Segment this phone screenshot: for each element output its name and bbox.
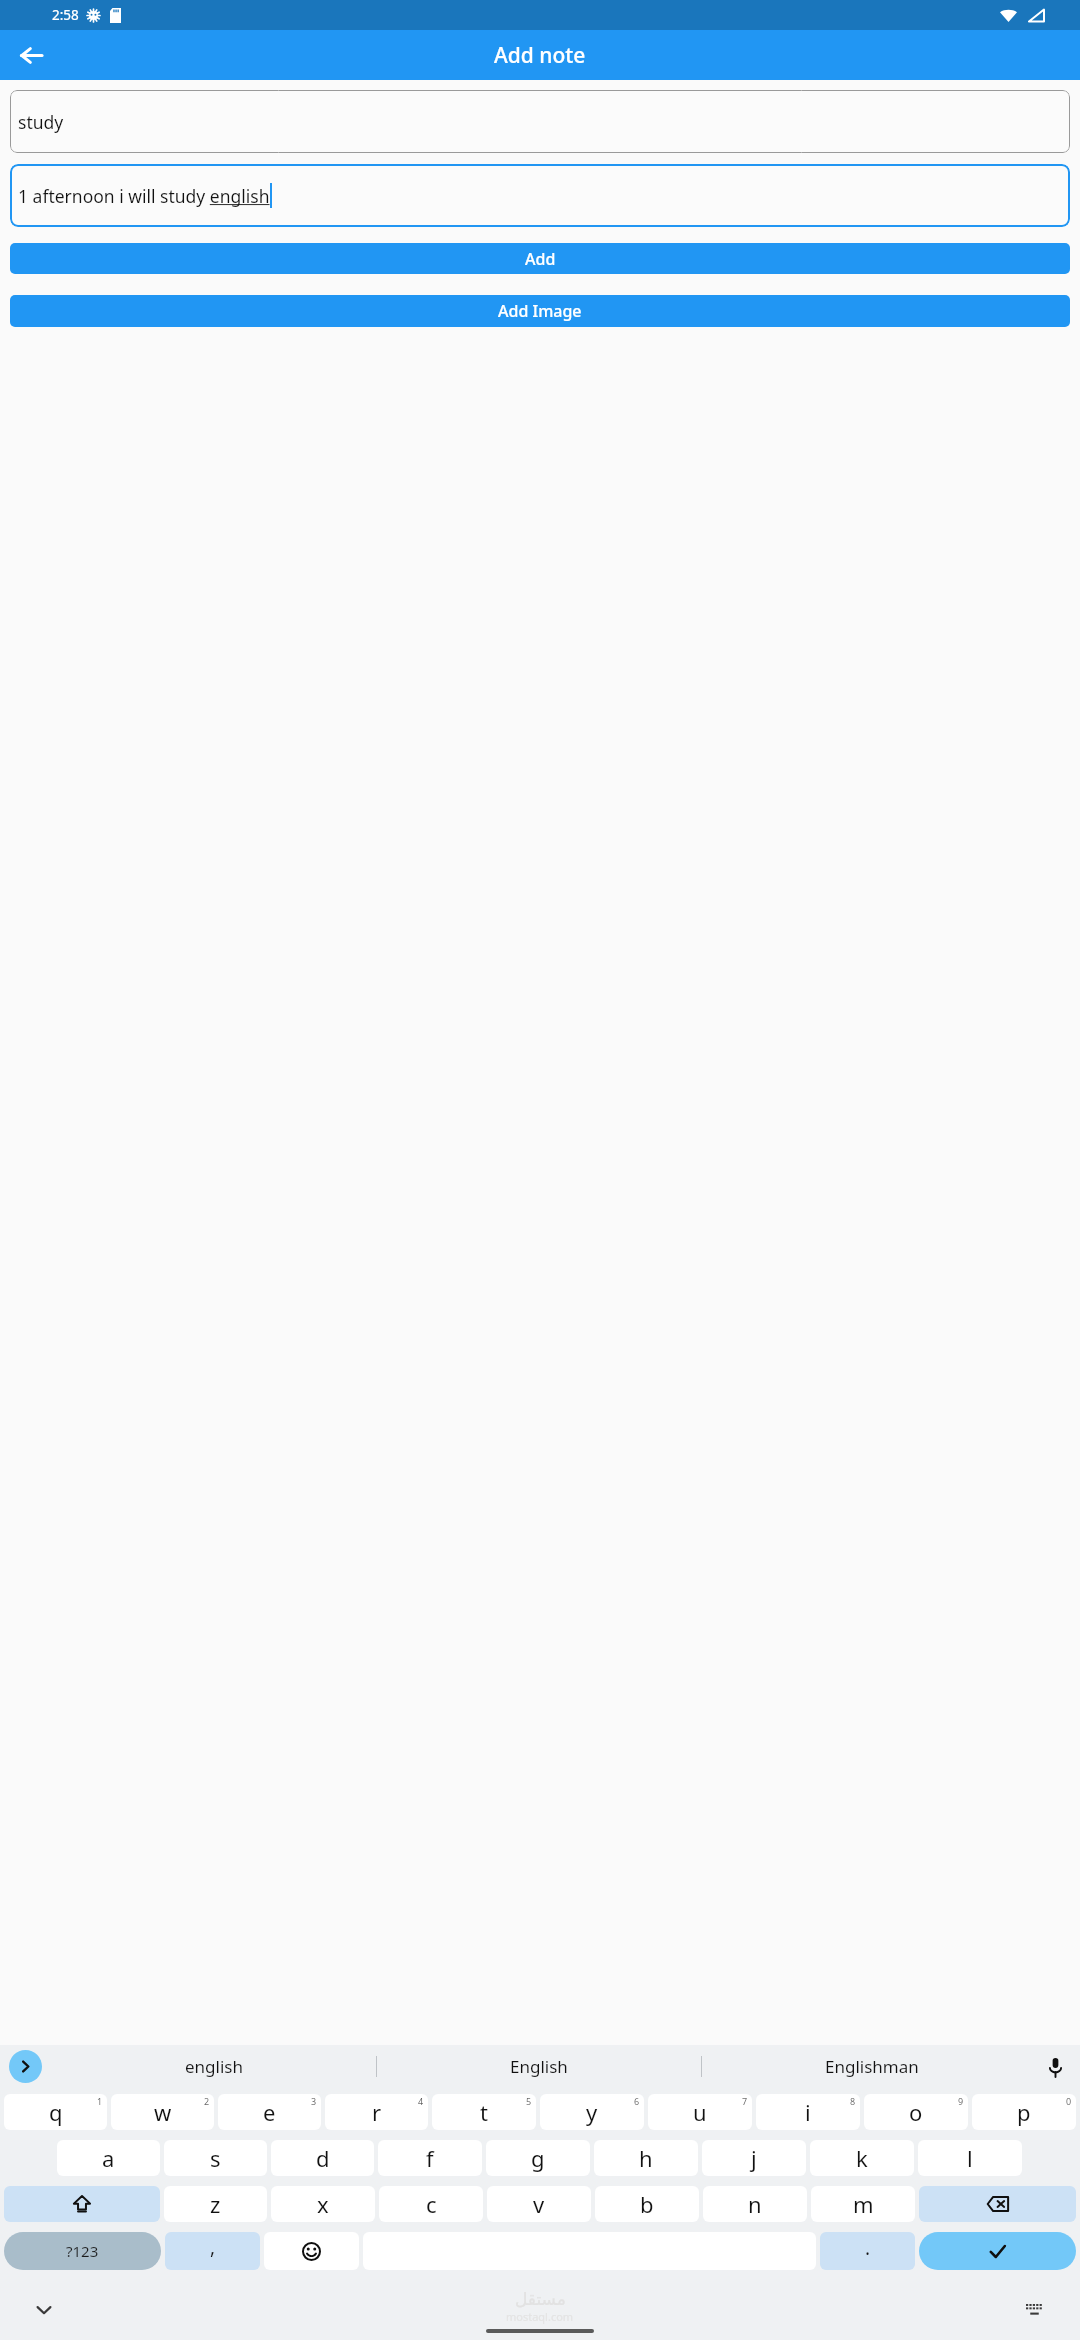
staticText: 9 (958, 2095, 964, 2107)
staticText: l (967, 2143, 973, 2173)
staticText: u (693, 2097, 707, 2127)
staticText: 1 afternoon i will study english (18, 184, 270, 208)
staticText: 2 (204, 2095, 210, 2107)
staticText: x (317, 2189, 329, 2219)
staticText: English (510, 2055, 568, 2078)
staticText: . (865, 2235, 871, 2261)
staticText: s (210, 2143, 221, 2173)
staticText: w (154, 2097, 172, 2127)
staticText: english (185, 2055, 243, 2078)
staticText: 2:58 (52, 6, 79, 24)
staticText: t (480, 2097, 488, 2127)
staticText: e (263, 2097, 276, 2127)
staticText: مستقل (515, 2289, 566, 2309)
staticText: n (748, 2189, 762, 2219)
button[interactable]: More suggestions (9, 2050, 42, 2083)
button[interactable]: english (52, 2045, 376, 2088)
staticText: p (1017, 2097, 1031, 2127)
button[interactable]: q (4, 2094, 107, 2130)
staticText: m (853, 2189, 874, 2219)
staticText: d (316, 2143, 330, 2173)
button[interactable]: Englishman (702, 2045, 1042, 2088)
button[interactable]: y (540, 2094, 644, 2130)
button[interactable]: study (10, 90, 1070, 153)
staticText: 4 (418, 2095, 424, 2107)
button[interactable]: Switch keyboard (1014, 2290, 1054, 2330)
button[interactable]: English (377, 2045, 701, 2088)
button[interactable]: e (218, 2094, 321, 2130)
staticText: study (18, 110, 64, 134)
button[interactable]: Enter (919, 2232, 1076, 2270)
button[interactable]: m (811, 2186, 915, 2222)
staticText: v (533, 2189, 545, 2219)
button[interactable]: Hide keyboard (24, 2290, 64, 2330)
button[interactable]: z (164, 2186, 267, 2222)
button[interactable]: s (164, 2140, 267, 2176)
button[interactable]: . (820, 2232, 915, 2270)
staticText: 5 (526, 2095, 532, 2107)
button[interactable]: u (648, 2094, 752, 2130)
staticText: o (909, 2097, 923, 2127)
staticText: 6 (634, 2095, 640, 2107)
staticText: j (751, 2143, 757, 2173)
staticText: b (640, 2189, 654, 2219)
button[interactable]: i (756, 2094, 860, 2130)
button[interactable]: 1 afternoon i will study english (10, 164, 1070, 227)
staticText: a (102, 2143, 115, 2173)
staticText: g (531, 2143, 545, 2173)
staticText: , (210, 2234, 216, 2260)
button[interactable]: a (57, 2140, 160, 2176)
button[interactable]: ?123 (4, 2232, 161, 2270)
button[interactable]: p (972, 2094, 1076, 2130)
staticText: 1 (97, 2095, 103, 2107)
staticText: f (426, 2143, 434, 2173)
staticText: i (805, 2097, 811, 2127)
button[interactable]: d (271, 2140, 374, 2176)
button[interactable]: Add (10, 243, 1070, 274)
staticText: q (49, 2097, 63, 2127)
button[interactable]: v (487, 2186, 591, 2222)
staticText: 3 (311, 2095, 317, 2107)
button[interactable]: Backspace (919, 2186, 1076, 2222)
button[interactable]: , (165, 2232, 260, 2270)
button[interactable]: j (702, 2140, 806, 2176)
button[interactable]: Emoji (264, 2232, 359, 2270)
button[interactable]: f (378, 2140, 482, 2176)
staticText: Add note (494, 41, 586, 70)
button[interactable]: w (111, 2094, 214, 2130)
staticText: z (210, 2189, 221, 2219)
staticText: 8 (850, 2095, 856, 2107)
button[interactable]: Voice input (1038, 2050, 1072, 2084)
button[interactable]: Back (9, 33, 53, 77)
button[interactable]: n (703, 2186, 807, 2222)
staticText: c (426, 2189, 437, 2219)
button[interactable]: l (918, 2140, 1022, 2176)
button[interactable]: x (271, 2186, 375, 2222)
button[interactable]: r (325, 2094, 428, 2130)
staticText: Englishman (825, 2055, 919, 2078)
staticText: y (586, 2097, 598, 2127)
button[interactable]: c (379, 2186, 483, 2222)
button[interactable]: Add Image (10, 295, 1070, 327)
button[interactable]: h (594, 2140, 698, 2176)
staticText: ?123 (66, 2241, 99, 2261)
button[interactable]: o (864, 2094, 968, 2130)
button[interactable]: Shift (4, 2186, 160, 2222)
staticText: mostaql.com (506, 2309, 574, 2324)
button[interactable]: k (810, 2140, 914, 2176)
staticText: 0 (1066, 2095, 1072, 2107)
staticText: h (639, 2143, 653, 2173)
staticText: Add Image (498, 300, 582, 322)
button[interactable]: b (595, 2186, 699, 2222)
staticText: Add (525, 248, 556, 270)
staticText: k (856, 2143, 868, 2173)
button[interactable]: g (486, 2140, 590, 2176)
staticText: r (372, 2097, 382, 2127)
button[interactable]: t (432, 2094, 536, 2130)
staticText: 7 (742, 2095, 748, 2107)
